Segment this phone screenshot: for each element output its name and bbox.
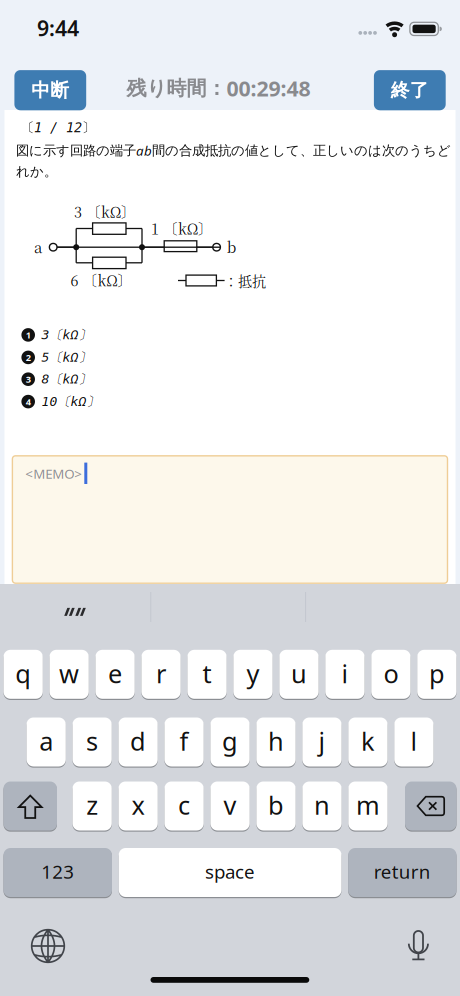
button[interactable]: Shift	[3, 781, 57, 832]
staticText: 123	[41, 859, 74, 884]
staticText: u	[291, 656, 307, 690]
button[interactable]: return	[348, 848, 456, 899]
staticText: 10〔kΩ〕	[41, 393, 99, 410]
button[interactable]: j	[302, 717, 342, 768]
staticText: 間の合成抵抗の値として、正しいのは次のうちど	[152, 142, 451, 159]
staticText: 中断	[31, 79, 69, 102]
staticText: a	[34, 236, 42, 258]
staticText: ab	[136, 142, 152, 159]
button[interactable]: space	[119, 848, 341, 899]
button[interactable]: i	[325, 650, 365, 701]
button[interactable]: l	[394, 717, 434, 768]
staticText: y	[246, 656, 259, 690]
staticText: 1 / 12	[34, 120, 82, 135]
staticText: f	[180, 724, 189, 758]
staticText: 9:44	[37, 14, 79, 42]
staticText: 〔	[21, 119, 34, 136]
button[interactable]: 1	[21, 325, 221, 345]
button[interactable]: c	[164, 781, 204, 832]
staticText: c	[178, 788, 190, 822]
staticText: 3〔kΩ〕	[41, 327, 91, 343]
staticText: ：抵抗	[224, 270, 266, 290]
staticText: v	[224, 788, 237, 822]
staticText: e	[108, 656, 122, 690]
button[interactable]: q	[3, 650, 43, 701]
staticText: r	[156, 656, 166, 690]
button[interactable]: w	[49, 650, 89, 701]
staticText: k	[361, 724, 375, 758]
staticText: j	[318, 724, 325, 758]
button[interactable]: 中断	[14, 70, 86, 110]
staticText: p	[429, 656, 445, 690]
staticText: <MEMO>	[25, 465, 82, 482]
staticText: d	[130, 724, 146, 758]
staticText: れか。	[16, 163, 57, 180]
button[interactable]: x	[118, 781, 158, 832]
button[interactable]: k	[348, 717, 388, 768]
staticText: 8〔kΩ〕	[41, 371, 91, 387]
button[interactable]: m	[348, 781, 388, 832]
staticText: x	[132, 788, 145, 822]
staticText: 残り時間：	[126, 76, 226, 101]
staticText: 4	[26, 395, 31, 408]
button[interactable]: Delete	[405, 781, 456, 832]
staticText: a	[39, 724, 53, 758]
staticText: 6 〔kΩ〕	[70, 270, 132, 290]
staticText: z	[86, 788, 98, 822]
staticText: 3	[26, 373, 31, 385]
staticText: i	[341, 656, 348, 690]
button[interactable]: p	[417, 650, 456, 701]
staticText: g	[222, 724, 238, 758]
staticText: 1	[26, 329, 31, 341]
staticText: 終了	[391, 79, 429, 102]
button[interactable]: y	[233, 650, 273, 701]
button[interactable]: 終了	[374, 70, 446, 110]
button[interactable]: e	[95, 650, 135, 701]
button[interactable]: 2	[21, 347, 221, 367]
staticText: 3 〔kΩ〕	[74, 201, 136, 222]
button[interactable]: h	[256, 717, 296, 768]
button[interactable]: 4	[21, 392, 221, 412]
button[interactable]: Predictions	[0, 0, 460, 996]
staticText: 1 〔kΩ〕	[151, 218, 213, 239]
button[interactable]: 3	[21, 369, 221, 389]
button[interactable]: a	[26, 717, 66, 768]
button[interactable]: 123	[3, 848, 112, 899]
staticText: b	[227, 236, 237, 257]
staticText: w	[59, 656, 79, 690]
staticText: n	[314, 788, 330, 822]
staticText: space	[205, 859, 255, 884]
staticText: 2	[26, 351, 31, 364]
staticText: m	[356, 788, 380, 822]
staticText: h	[268, 724, 284, 758]
button[interactable]: d	[118, 717, 158, 768]
staticText: q	[15, 656, 31, 690]
staticText: 〕	[82, 119, 95, 136]
button[interactable]: g	[210, 717, 250, 768]
button[interactable]: v	[210, 781, 250, 832]
staticText: return	[374, 859, 431, 884]
staticText: 5〔kΩ〕	[41, 349, 91, 366]
button[interactable]: r	[141, 650, 181, 701]
button[interactable]: n	[302, 781, 342, 832]
button[interactable]: u	[279, 650, 319, 701]
button[interactable]: Dictate	[394, 927, 443, 967]
button[interactable]: t	[187, 650, 227, 701]
button[interactable]: <MEMO>	[12, 456, 447, 583]
staticText: t	[202, 656, 211, 690]
button[interactable]: b	[256, 781, 296, 832]
button[interactable]: s	[72, 717, 112, 768]
staticText: s	[86, 724, 98, 758]
staticText: 00:29:48	[226, 74, 310, 102]
button[interactable]: o	[371, 650, 411, 701]
staticText: 図に示す回路の端子	[16, 142, 136, 159]
staticText: b	[268, 788, 284, 822]
button[interactable]: f	[164, 717, 204, 768]
button[interactable]: z	[72, 781, 112, 832]
staticText: l	[410, 724, 417, 758]
button[interactable]: Next keyboard	[24, 922, 72, 970]
staticText: o	[383, 656, 398, 690]
